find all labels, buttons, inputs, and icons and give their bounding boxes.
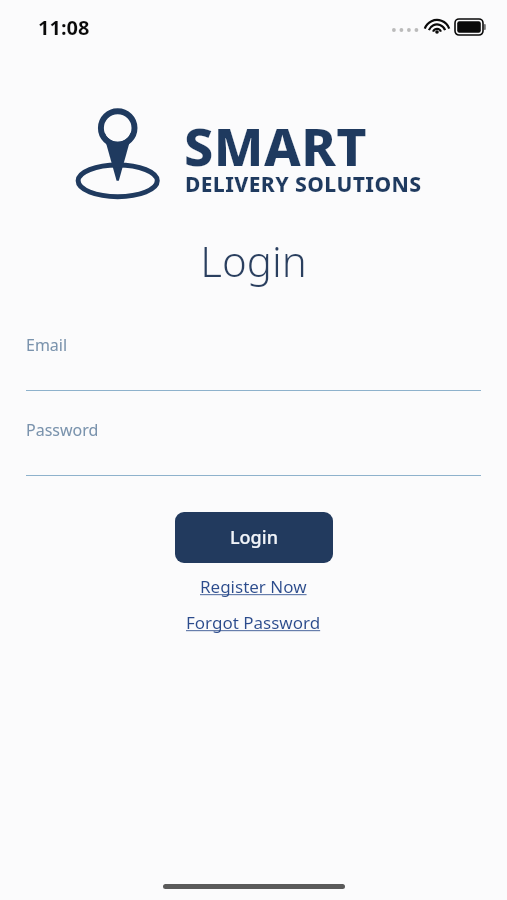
staticText: Login: [200, 232, 307, 289]
staticText: 11:08: [38, 14, 90, 41]
button[interactable]: Password: [26, 419, 481, 476]
button[interactable]: Email: [26, 334, 481, 391]
staticText: SMART: [184, 110, 368, 181]
staticText: Login: [230, 525, 278, 550]
button[interactable]: Login: [175, 512, 333, 563]
button[interactable]: Register Now: [192, 573, 315, 600]
staticText: Register Now: [200, 575, 307, 598]
staticText: Email: [26, 334, 68, 356]
staticText: Password: [26, 419, 99, 441]
staticText: DELIVERY SOLUTIONS: [185, 170, 422, 199]
staticText: Forgot Password: [186, 611, 321, 634]
button[interactable]: Forgot Password: [178, 609, 329, 636]
